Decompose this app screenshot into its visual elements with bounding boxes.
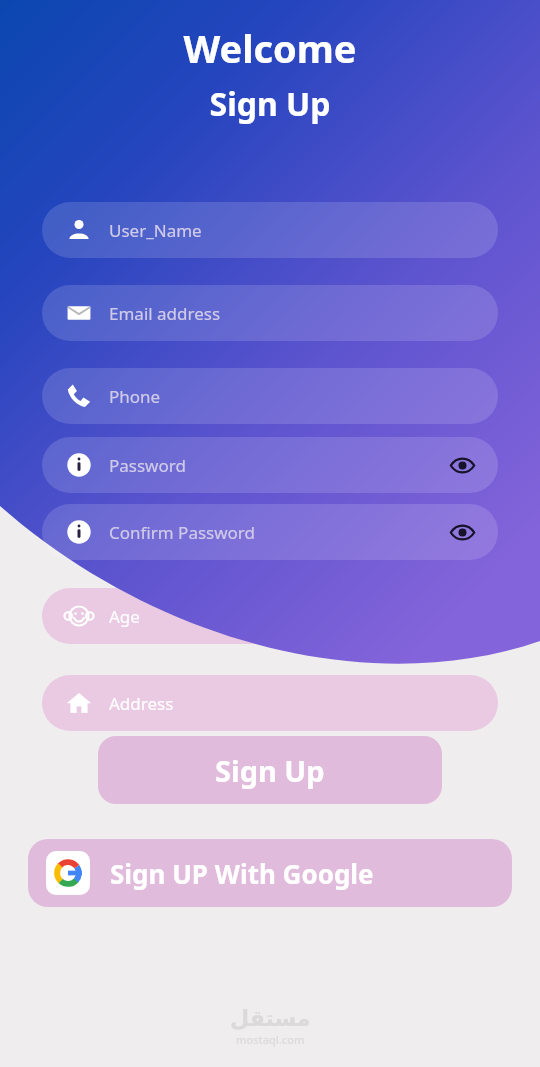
button[interactable]: Age	[42, 588, 498, 644]
button[interactable]: Confirm Password	[42, 504, 498, 560]
button[interactable]: Password	[42, 437, 498, 493]
staticText: Sign UP With Google	[110, 856, 374, 891]
button[interactable]: Email address	[42, 285, 498, 341]
staticText: User_Name	[109, 219, 202, 242]
staticText: Sign Up	[0, 82, 540, 126]
staticText: Age	[109, 605, 140, 628]
button[interactable]: Toggle password visibility	[446, 449, 478, 481]
staticText: Password	[109, 454, 186, 477]
staticText: Sign Up	[215, 751, 325, 790]
button[interactable]: Toggle password visibility	[446, 516, 478, 548]
button[interactable]: Sign Up	[98, 736, 442, 804]
staticText: مستقل	[230, 1006, 311, 1032]
button[interactable]: User_Name	[42, 202, 498, 258]
button[interactable]: Phone	[42, 368, 498, 424]
staticText: mostaql.com	[236, 1032, 305, 1047]
staticText: Address	[109, 692, 174, 715]
staticText: Email address	[109, 302, 221, 325]
staticText: Confirm Password	[109, 521, 255, 544]
button[interactable]: Address	[42, 675, 498, 731]
staticText: Phone	[109, 385, 161, 408]
button[interactable]: Sign UP With Google	[28, 839, 512, 907]
staticText: Welcome	[0, 22, 540, 74]
